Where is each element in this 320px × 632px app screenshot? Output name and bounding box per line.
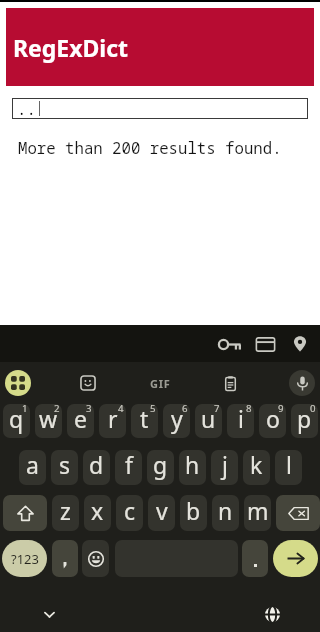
staticText: x <box>91 495 104 526</box>
staticText: ?123 <box>11 550 39 568</box>
button[interactable]: Stickers <box>75 370 101 396</box>
button[interactable]: y <box>163 404 190 438</box>
button[interactable]: s <box>51 450 78 485</box>
button[interactable]: f <box>115 450 142 485</box>
staticText: p <box>297 404 312 434</box>
button[interactable]: GIF <box>146 369 174 397</box>
button[interactable]: n <box>212 495 239 531</box>
button[interactable]: d <box>83 450 110 485</box>
button[interactable]: Addresses <box>287 331 313 357</box>
button[interactable]: k <box>243 450 270 485</box>
staticText: s <box>59 450 71 480</box>
button[interactable]: RegExDict <box>6 8 314 86</box>
staticText: j <box>222 450 228 480</box>
staticText: y <box>171 404 183 434</box>
staticText: 6 <box>182 404 188 415</box>
button[interactable]: a <box>19 450 46 485</box>
staticText: o <box>266 404 280 434</box>
button[interactable]: Clipboard <box>217 370 243 396</box>
button[interactable]: l <box>275 450 302 485</box>
button[interactable]: Voice input <box>289 370 315 396</box>
staticText: t <box>140 404 149 434</box>
staticText: b <box>186 495 201 526</box>
staticText: v <box>156 495 168 526</box>
button[interactable]: r <box>99 404 126 438</box>
staticText: GIF <box>150 376 171 391</box>
staticText: 8 <box>246 404 252 415</box>
staticText: m <box>247 495 269 526</box>
button[interactable]: q <box>3 404 30 438</box>
staticText: w <box>39 404 58 434</box>
button[interactable]: m <box>244 495 271 531</box>
staticText: i <box>238 404 244 434</box>
button[interactable]: e <box>67 404 94 438</box>
staticText: 4 <box>118 404 124 415</box>
button[interactable]: Comma <box>52 540 78 577</box>
staticText: u <box>201 404 216 434</box>
staticText: r <box>108 404 118 434</box>
staticText: h <box>185 450 200 480</box>
button[interactable]: Hide keyboard <box>36 601 62 627</box>
button[interactable]: Period <box>242 540 268 577</box>
staticText: 3 <box>86 404 92 415</box>
button[interactable]: h <box>179 450 206 485</box>
staticText: k <box>250 450 263 480</box>
staticText: c <box>124 495 136 526</box>
staticText: d <box>89 450 104 480</box>
staticText: e <box>74 404 87 434</box>
button[interactable]: g <box>147 450 174 485</box>
button[interactable]: Google apps <box>5 370 31 396</box>
staticText: a <box>26 450 39 480</box>
staticText: .. <box>17 98 36 119</box>
button[interactable]: Payment cards <box>252 331 278 357</box>
staticText: z <box>60 495 71 526</box>
staticText: More than 200 results found. <box>18 137 282 158</box>
button[interactable]: i <box>227 404 254 438</box>
staticText: 0 <box>310 404 316 415</box>
button[interactable]: Enter <box>273 540 318 577</box>
button[interactable]: u <box>195 404 222 438</box>
button[interactable]: Passwords <box>216 331 242 357</box>
staticText: 5 <box>150 404 156 415</box>
button[interactable]: p <box>291 404 318 438</box>
button[interactable]: x <box>84 495 111 531</box>
staticText: 1 <box>22 404 28 415</box>
staticText: 9 <box>278 404 284 415</box>
button[interactable]: Backspace <box>276 495 320 531</box>
staticText: g <box>153 450 168 480</box>
button[interactable]: b <box>180 495 207 531</box>
button[interactable]: Change language <box>259 601 285 627</box>
button[interactable]: c <box>116 495 143 531</box>
button[interactable]: t <box>131 404 158 438</box>
staticText: RegExDict <box>13 32 129 63</box>
button[interactable]: .. <box>12 98 308 119</box>
button[interactable]: v <box>148 495 175 531</box>
staticText: 2 <box>54 404 60 415</box>
button[interactable]: o <box>259 404 286 438</box>
staticText: 7 <box>214 404 220 415</box>
button[interactable]: w <box>35 404 62 438</box>
button[interactable]: ?123 <box>2 540 47 577</box>
button[interactable]: j <box>211 450 238 485</box>
button[interactable]: Shift <box>3 495 47 531</box>
button[interactable]: z <box>52 495 79 531</box>
staticText: n <box>218 495 233 526</box>
button[interactable]: Emoji <box>82 540 109 577</box>
staticText: l <box>286 450 292 480</box>
staticText: q <box>9 404 24 434</box>
staticText: f <box>125 450 133 480</box>
